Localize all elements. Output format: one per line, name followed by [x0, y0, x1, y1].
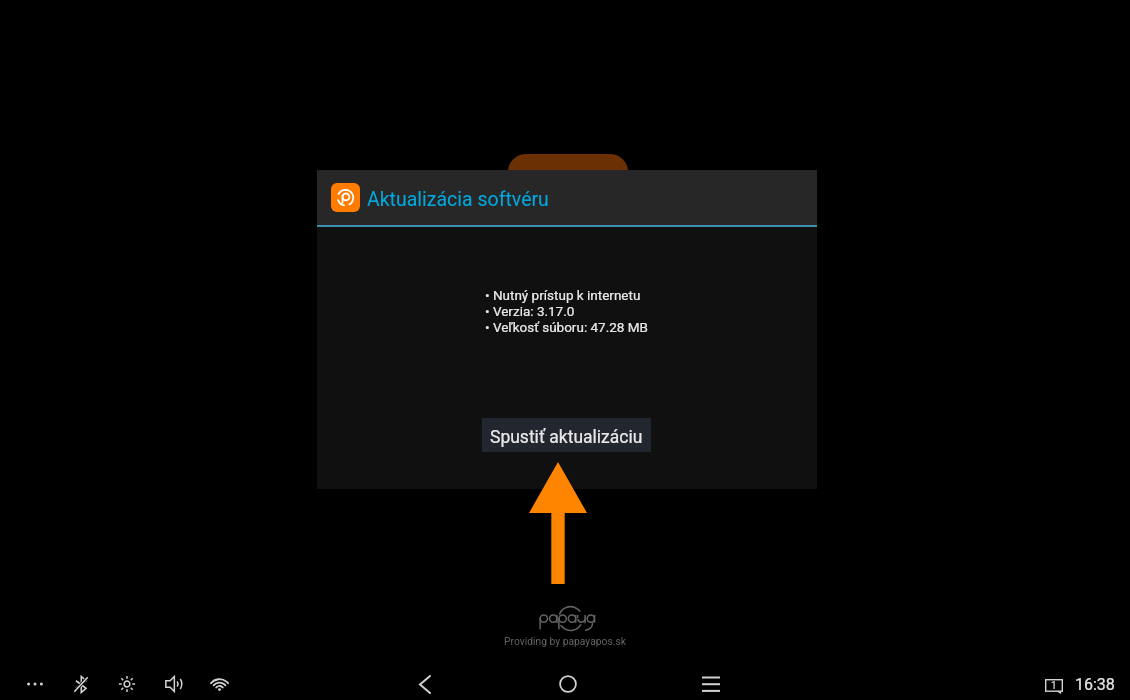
button[interactable]: Bluetooth — [65, 668, 97, 700]
staticText: • Veľkosť súboru: 47.28 MB — [485, 319, 648, 335]
button[interactable]: Brightness — [111, 668, 143, 700]
button[interactable]: Wi-Fi — [203, 668, 235, 700]
staticText: Providing by papayapos.sk — [504, 635, 626, 647]
button[interactable]: Spustiť aktualizáciu — [482, 418, 651, 452]
staticText: 16:38 — [1075, 675, 1115, 694]
button[interactable]: More options — [19, 668, 51, 700]
button[interactable]: Recent apps — [695, 668, 727, 700]
staticText: Aktualizácia softvéru — [367, 188, 549, 211]
button[interactable]: Back — [409, 668, 441, 700]
staticText: • Verzia: 3.17.0 — [485, 303, 575, 319]
button[interactable]: Home — [552, 668, 584, 700]
button[interactable]: Update — [508, 154, 628, 190]
button[interactable]: Volume — [157, 668, 189, 700]
staticText: • Nutný prístup k internetu — [485, 287, 641, 303]
staticText: Spustiť aktualizáciu — [490, 427, 643, 448]
staticText: 1 — [1051, 680, 1057, 692]
button[interactable]: Notifications — [1038, 668, 1070, 700]
